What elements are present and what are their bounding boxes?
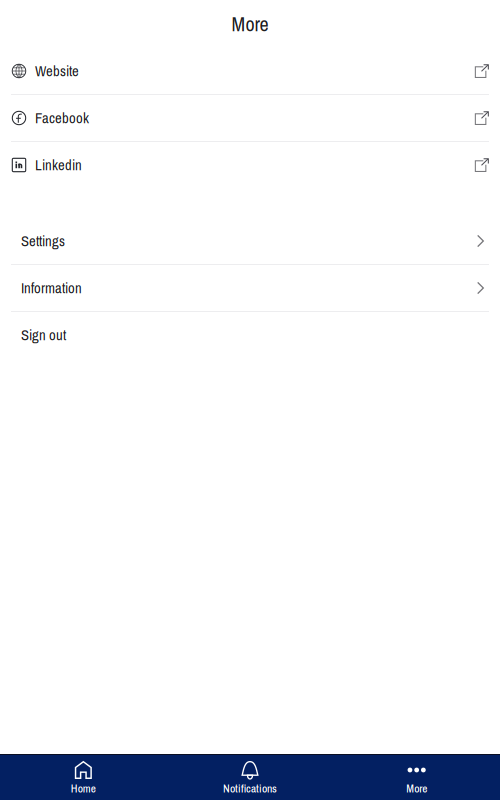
staticText: Home [71, 781, 96, 796]
staticText: More [231, 10, 268, 37]
staticText: Linkedin [35, 155, 82, 175]
button[interactable]: More [333, 755, 500, 800]
button[interactable]: Sign out [0, 312, 500, 358]
staticText: More [406, 781, 427, 796]
staticText: Settings [21, 231, 65, 251]
button[interactable]: Information [0, 265, 500, 311]
button[interactable]: Linkedin [0, 142, 500, 188]
staticText: Notifications [223, 781, 277, 796]
button[interactable]: Notifications [167, 755, 333, 800]
button[interactable]: Settings [0, 218, 500, 264]
button[interactable]: Facebook [0, 95, 500, 141]
staticText: Website [35, 61, 79, 81]
staticText: Information [21, 278, 82, 298]
staticText: Sign out [21, 325, 66, 345]
button[interactable]: Website [0, 48, 500, 94]
staticText: Facebook [35, 108, 89, 128]
button[interactable]: Home [0, 755, 167, 800]
